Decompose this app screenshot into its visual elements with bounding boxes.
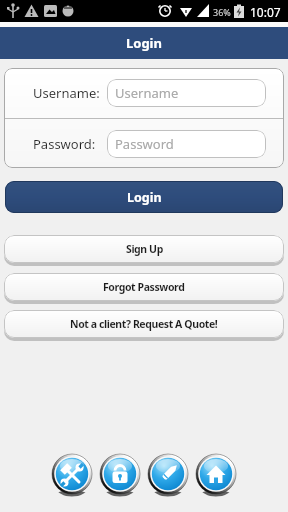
button[interactable] (194, 453, 238, 497)
staticText: Username (115, 84, 179, 102)
staticText: Forgot Password (103, 280, 185, 294)
button[interactable] (50, 453, 94, 497)
staticText: 10:07 (250, 4, 281, 20)
button[interactable]: Login (5, 181, 283, 213)
button[interactable]: Forgot Password (4, 273, 284, 301)
button[interactable]: Not a client? Request A Quote! (4, 310, 284, 338)
staticText: Password (115, 135, 174, 153)
button[interactable] (146, 453, 190, 497)
staticText: Login (126, 34, 162, 52)
staticText: 36% (213, 6, 231, 18)
button[interactable] (98, 453, 142, 497)
staticText: Login (127, 189, 162, 206)
button[interactable]: Username (107, 79, 266, 107)
button[interactable]: Password (107, 130, 266, 158)
staticText: Not a client? Request A Quote! (70, 317, 218, 331)
staticText: Sign Up (126, 242, 163, 256)
button[interactable]: Sign Up (4, 235, 284, 263)
staticText: Username: (33, 84, 100, 102)
staticText: Password: (33, 135, 96, 153)
